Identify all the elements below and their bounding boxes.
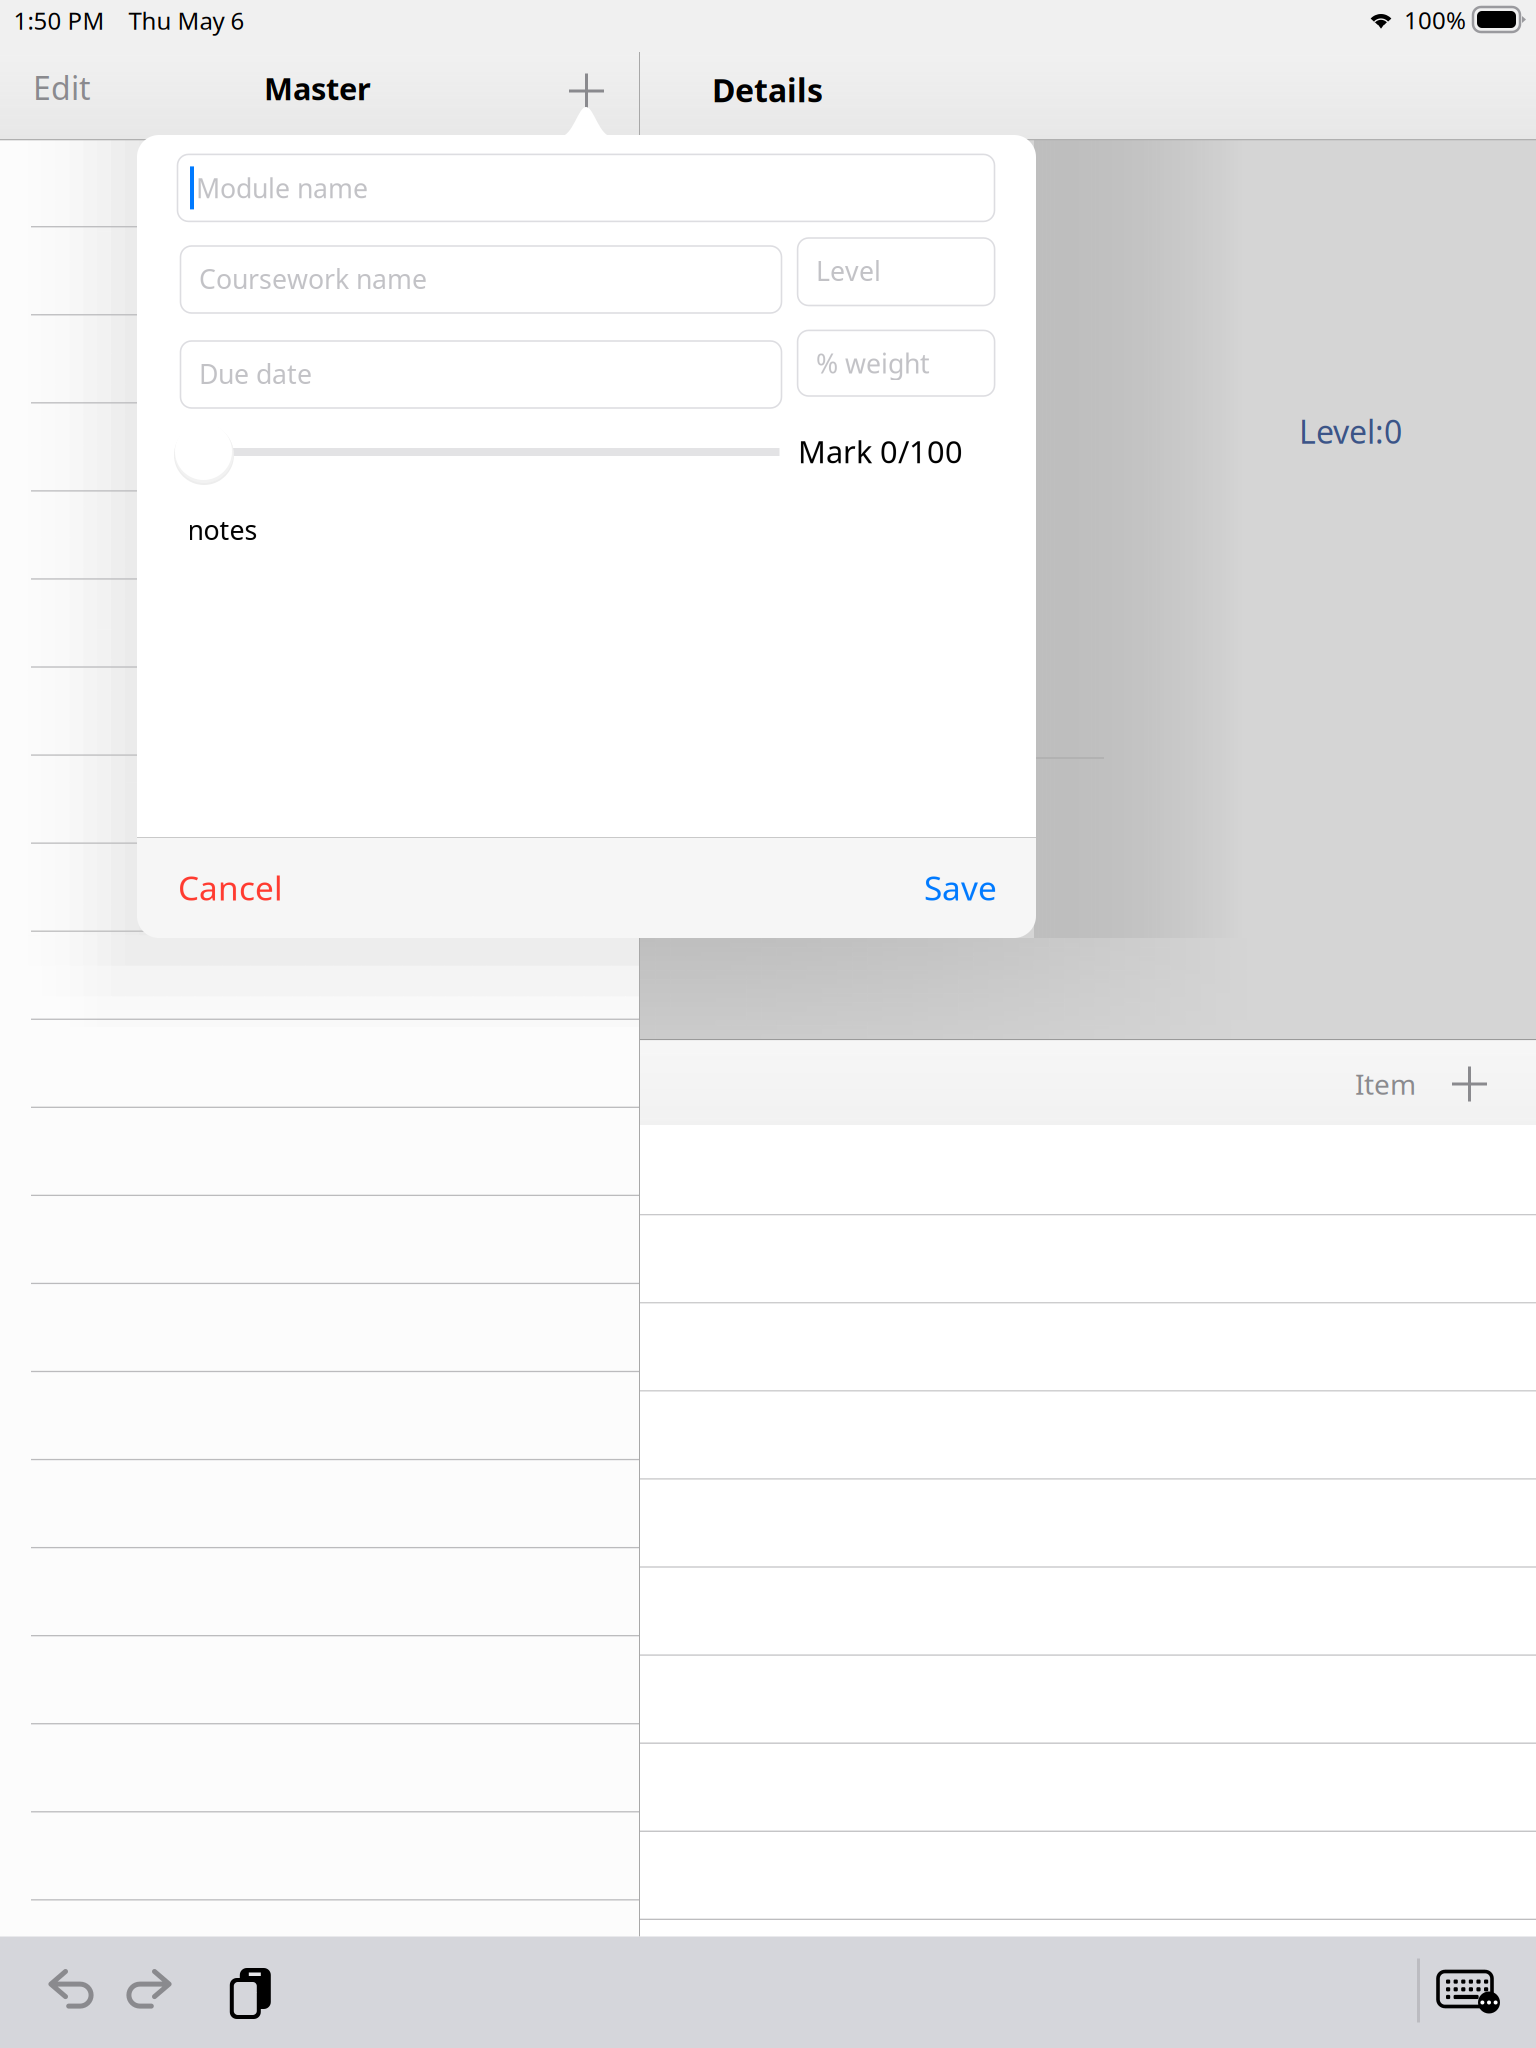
button[interactable] xyxy=(0,1812,639,1900)
button[interactable]: Save xyxy=(924,865,997,909)
staticText: Cancel xyxy=(178,865,283,910)
button[interactable]: Module name xyxy=(177,154,994,221)
button[interactable] xyxy=(640,1656,1536,1744)
button[interactable] xyxy=(640,1744,1536,1832)
button[interactable] xyxy=(0,1724,639,1812)
button[interactable] xyxy=(0,1108,639,1196)
button[interactable]: Coursework name xyxy=(180,246,781,313)
staticText: Details xyxy=(712,68,823,111)
staticText: Coursework name xyxy=(199,261,427,296)
button[interactable]: Undo xyxy=(40,1967,92,2011)
staticText: Master xyxy=(264,68,371,109)
button[interactable] xyxy=(640,1920,1536,2008)
button[interactable] xyxy=(640,1568,1536,1656)
button[interactable] xyxy=(0,1196,639,1284)
staticText: Module name xyxy=(196,170,368,206)
button[interactable] xyxy=(0,756,639,844)
staticText: notes xyxy=(187,512,257,547)
button[interactable] xyxy=(640,1480,1536,1568)
staticText: 1:50 PM xyxy=(13,4,104,36)
button[interactable] xyxy=(0,1460,639,1548)
staticText: Level:0 xyxy=(1299,410,1402,452)
staticText: Level xyxy=(816,253,881,288)
button[interactable] xyxy=(640,1304,1536,1392)
button[interactable] xyxy=(0,491,639,580)
button[interactable]: Hide Keyboard xyxy=(1438,1971,1500,2013)
button[interactable]: Level xyxy=(798,238,995,305)
button[interactable]: Add xyxy=(569,73,604,108)
button[interactable] xyxy=(640,1215,1536,1304)
button[interactable]: Mark xyxy=(173,421,237,487)
button[interactable] xyxy=(0,1372,639,1460)
button[interactable]: Redo xyxy=(129,1967,181,2011)
button[interactable] xyxy=(0,315,639,403)
button[interactable]: Due date xyxy=(180,341,781,408)
staticText: Mark 0/100 xyxy=(798,431,963,472)
button[interactable] xyxy=(0,1636,639,1724)
button[interactable]: % weight xyxy=(798,330,995,396)
button[interactable] xyxy=(0,139,639,227)
button[interactable] xyxy=(0,1020,639,1108)
staticText: % weight xyxy=(816,345,930,381)
button[interactable] xyxy=(640,1125,1536,1215)
button[interactable]: Cancel xyxy=(178,865,283,909)
button[interactable] xyxy=(0,580,639,668)
button[interactable] xyxy=(0,1548,639,1636)
button[interactable] xyxy=(640,1832,1536,1920)
button[interactable] xyxy=(0,1900,639,1989)
button[interactable] xyxy=(0,668,639,756)
button[interactable]: Item xyxy=(1355,1066,1487,1102)
button[interactable]: Edit xyxy=(33,67,91,107)
button[interactable] xyxy=(0,1284,639,1372)
staticText: Thu May 6 xyxy=(128,4,244,36)
staticText: Item xyxy=(1355,1065,1416,1103)
staticText: Save xyxy=(924,865,997,910)
staticText: Edit xyxy=(33,66,91,109)
staticText: Due date xyxy=(199,356,312,391)
button[interactable] xyxy=(0,844,639,932)
button[interactable] xyxy=(0,932,639,1020)
button[interactable]: Paste xyxy=(230,1968,275,2020)
staticText: 100% xyxy=(1404,4,1466,36)
button[interactable] xyxy=(0,227,639,315)
button[interactable] xyxy=(0,403,639,492)
button[interactable] xyxy=(640,1392,1536,1480)
